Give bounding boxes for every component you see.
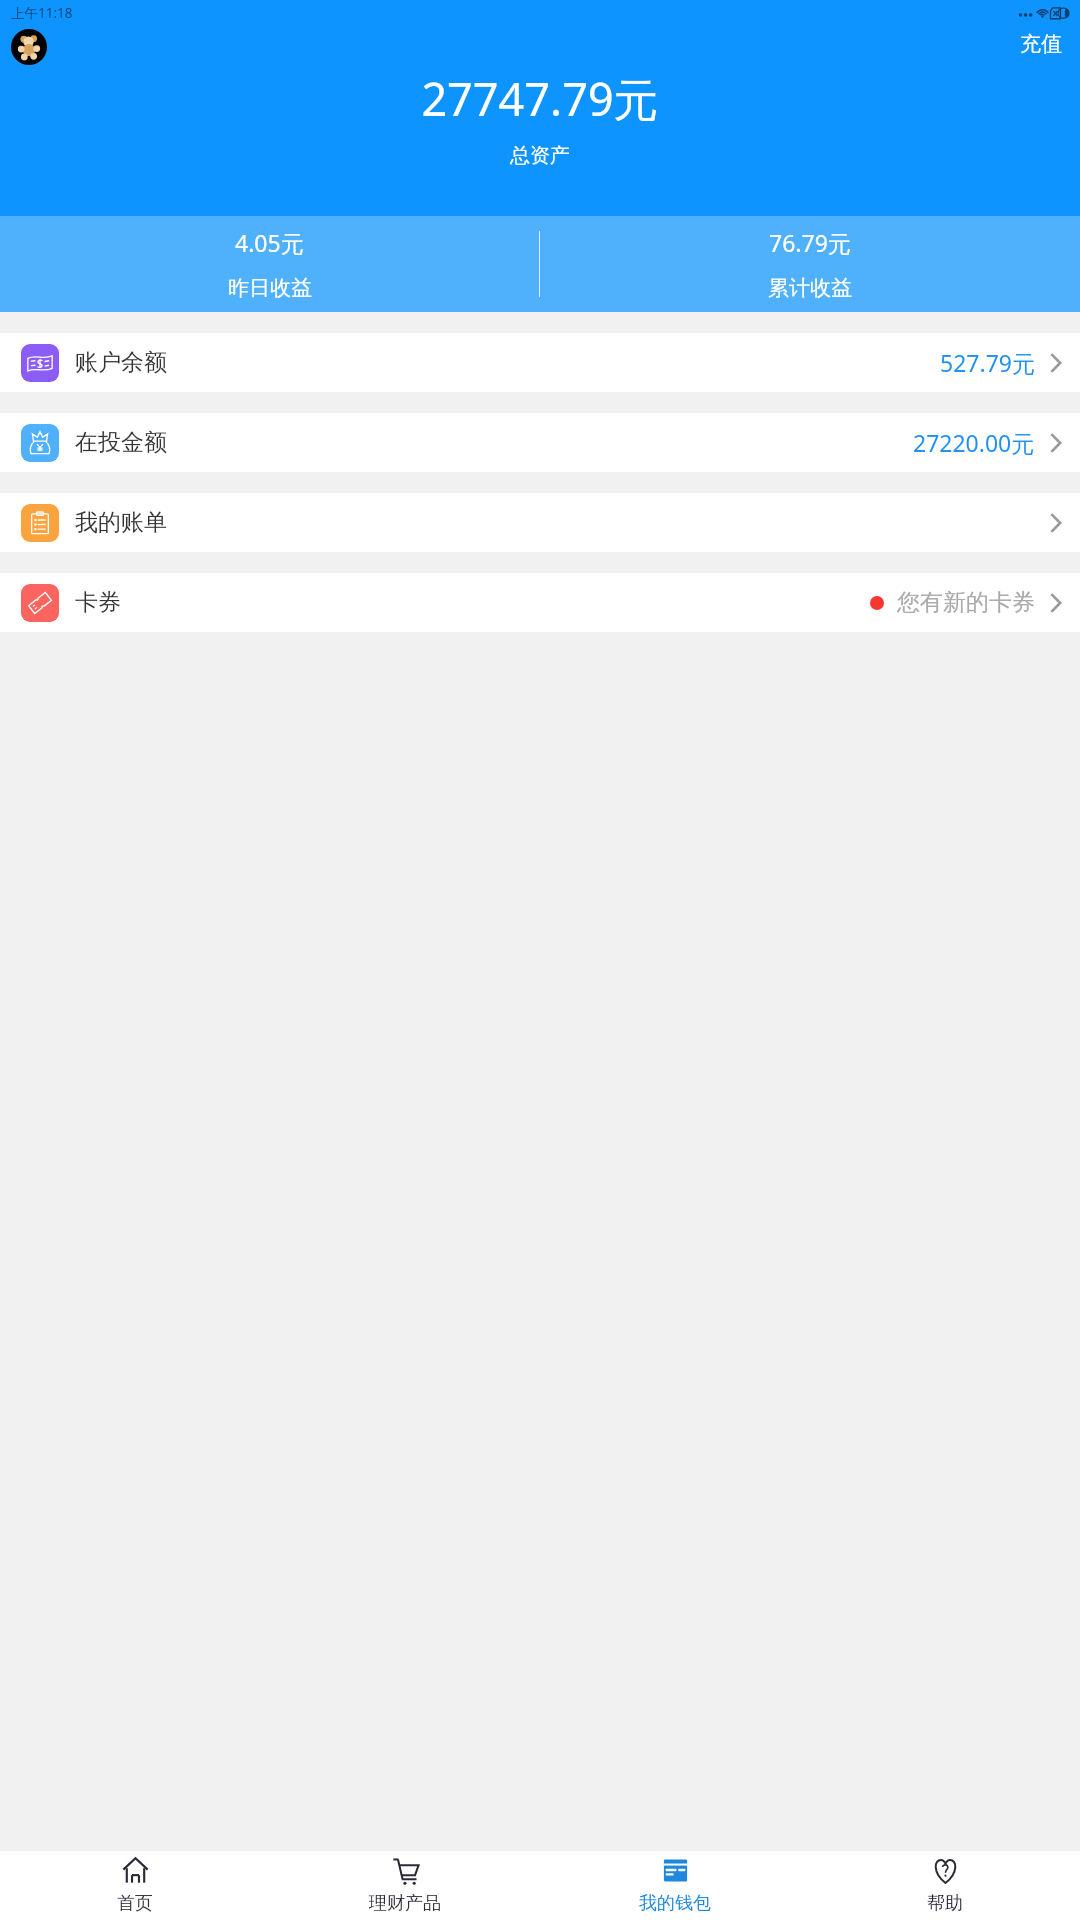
- button[interactable]: 首页: [0, 1851, 270, 1920]
- staticText: 您有新的卡券: [897, 588, 1035, 617]
- staticText: 总资产: [510, 143, 570, 168]
- staticText: 27747.79元: [421, 68, 659, 129]
- button[interactable]: 理财产品: [270, 1851, 540, 1920]
- staticText: 527.79元: [940, 347, 1035, 378]
- button[interactable]: 在投金额: [0, 413, 1080, 472]
- button[interactable]: 76.79元: [540, 216, 1080, 312]
- button[interactable]: 4.05元: [0, 216, 539, 312]
- staticText: 累计收益: [768, 275, 852, 301]
- button[interactable]: 账户余额: [0, 333, 1080, 392]
- staticText: 4.05元: [235, 227, 304, 258]
- staticText: 昨日收益: [228, 275, 312, 301]
- staticText: 账户余额: [75, 348, 167, 377]
- staticText: 我的钱包: [639, 1892, 711, 1915]
- staticText: 我的账单: [75, 508, 167, 537]
- staticText: 上午11:18: [11, 4, 73, 22]
- staticText: 充值: [1020, 31, 1062, 57]
- button[interactable]: 卡券: [0, 573, 1080, 632]
- button[interactable]: Profile: [11, 29, 47, 65]
- staticText: 27220.00元: [913, 427, 1035, 458]
- button[interactable]: 我的钱包: [540, 1851, 810, 1920]
- button[interactable]: 帮助: [810, 1851, 1080, 1920]
- staticText: 76.79元: [769, 227, 851, 258]
- staticText: 在投金额: [75, 428, 167, 457]
- staticText: 卡券: [75, 588, 121, 617]
- staticText: 首页: [117, 1892, 153, 1915]
- button[interactable]: 充值: [1016, 29, 1066, 59]
- staticText: 理财产品: [369, 1892, 441, 1915]
- button[interactable]: 我的账单: [0, 493, 1080, 552]
- staticText: 帮助: [927, 1892, 963, 1915]
